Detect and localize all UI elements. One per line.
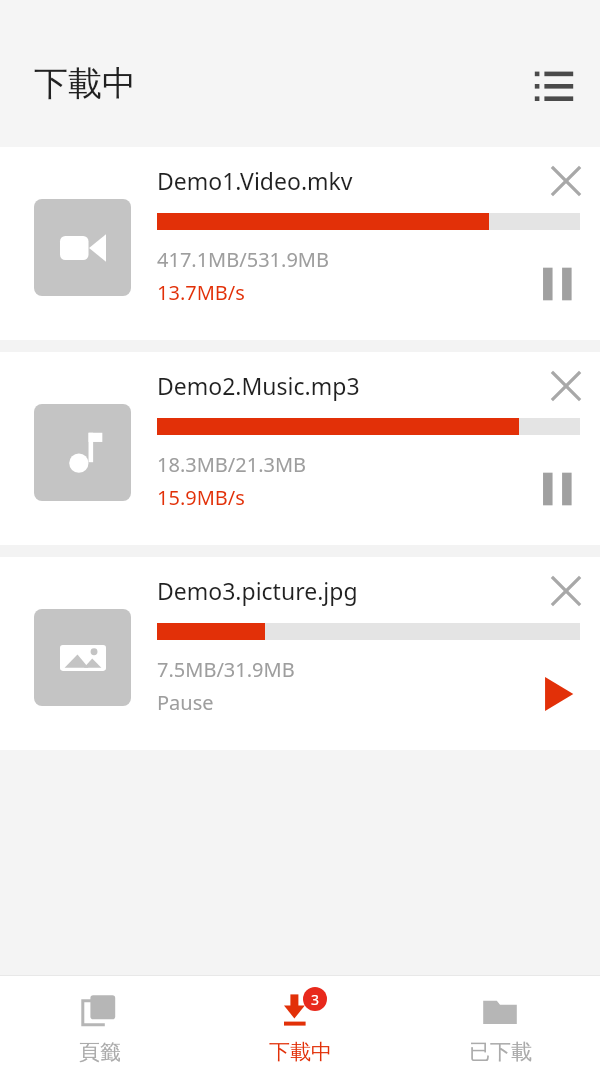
button[interactable]: Pause	[526, 252, 590, 316]
button[interactable]: Resume	[526, 662, 590, 726]
button[interactable]: 已下載	[400, 979, 600, 1073]
staticText: Demo2.Music.mp3	[157, 370, 360, 401]
staticText: 3	[311, 990, 320, 1009]
button[interactable]: Cancel download	[538, 358, 594, 414]
button[interactable]: Pause	[526, 457, 590, 521]
button[interactable]: Cancel download	[538, 153, 594, 209]
staticText: 13.7MB/s	[157, 279, 245, 306]
button[interactable]: 3	[200, 979, 400, 1073]
button[interactable]: Demo1.Video.mkv	[0, 147, 600, 340]
staticText: 下載中	[269, 1039, 332, 1065]
staticText: 頁籤	[79, 1039, 121, 1065]
button[interactable]: Cancel download	[538, 563, 594, 619]
button[interactable]: 頁籤	[0, 979, 200, 1073]
button[interactable]: Demo3.picture.jpg	[0, 557, 600, 750]
staticText: 417.1MB/531.9MB	[157, 246, 329, 273]
staticText: Demo3.picture.jpg	[157, 575, 358, 606]
staticText: 7.5MB/31.9MB	[157, 656, 295, 683]
staticText: 15.9MB/s	[157, 484, 245, 511]
button[interactable]: List view	[526, 56, 582, 112]
button[interactable]: Demo2.Music.mp3	[0, 352, 600, 545]
staticText: 已下載	[469, 1039, 532, 1065]
staticText: Demo1.Video.mkv	[157, 165, 353, 196]
staticText: Pause	[157, 689, 214, 716]
staticText: 18.3MB/21.3MB	[157, 451, 307, 478]
staticText: 下載中	[34, 62, 136, 105]
